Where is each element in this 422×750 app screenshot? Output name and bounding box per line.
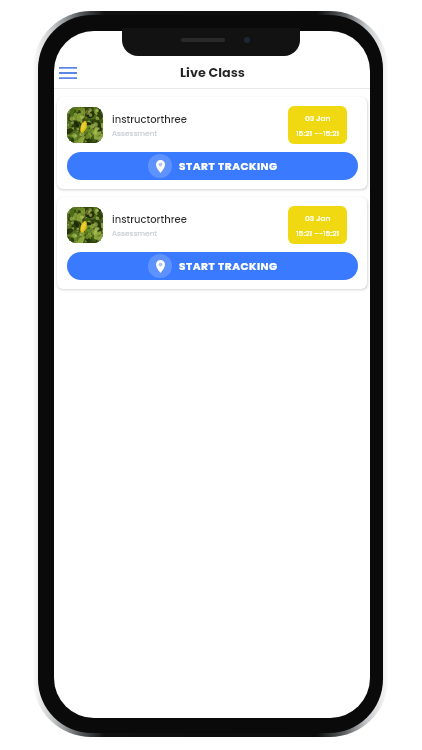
- staticText: 15:21 --15:21: [296, 128, 340, 138]
- staticText: Assessment: [112, 128, 158, 138]
- staticText: START TRACKING: [179, 259, 278, 274]
- button[interactable]: instructorthree: [57, 197, 367, 289]
- staticText: 15:21 --15:21: [296, 228, 340, 238]
- button[interactable]: Open navigation menu: [56, 61, 80, 85]
- button[interactable]: instructorthree: [57, 97, 367, 189]
- staticText: Live Class: [180, 64, 245, 82]
- staticText: Assessment: [112, 228, 158, 238]
- staticText: 03 Jan: [305, 113, 331, 123]
- button[interactable]: START TRACKING: [67, 252, 358, 280]
- staticText: instructorthree: [112, 212, 187, 226]
- staticText: START TRACKING: [179, 159, 278, 174]
- button[interactable]: START TRACKING: [67, 152, 358, 180]
- staticText: instructorthree: [112, 112, 187, 126]
- staticText: 03 Jan: [305, 213, 331, 223]
